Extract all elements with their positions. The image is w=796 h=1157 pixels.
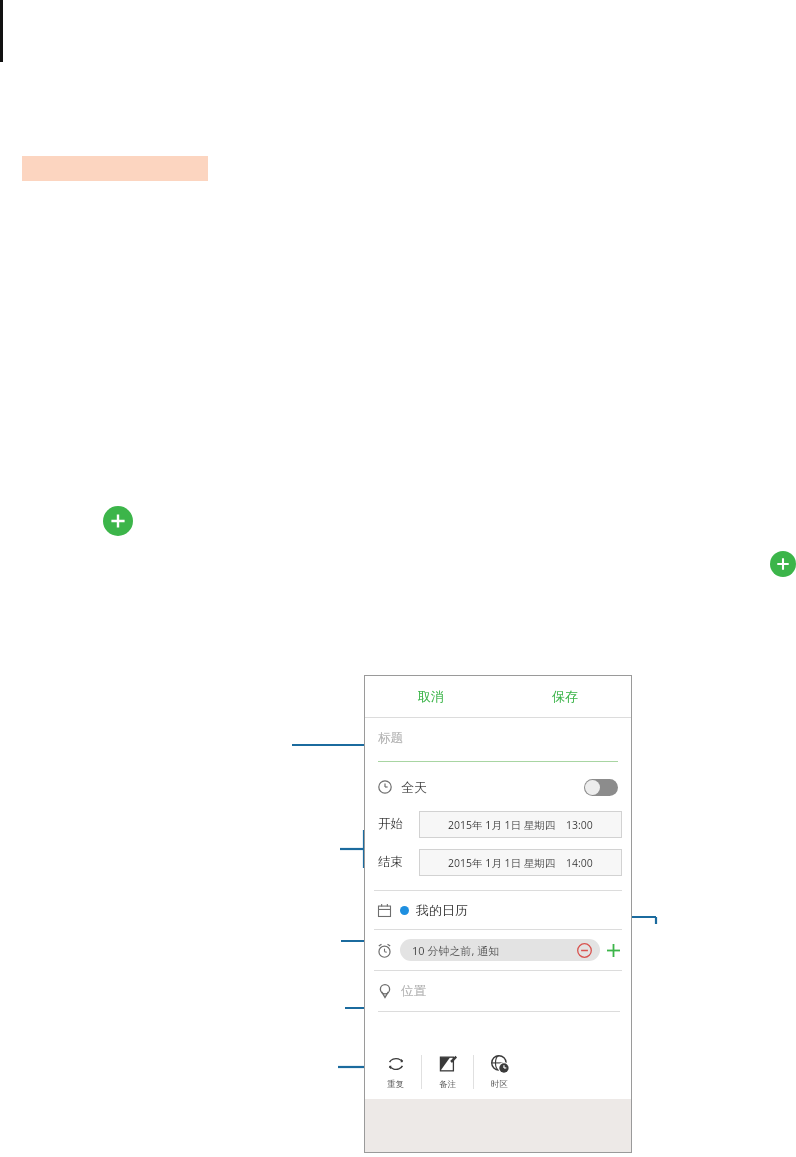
staticText: 全天 (401, 779, 427, 795)
staticText: 10 分钟之前, 通知 (412, 943, 500, 958)
staticText: 2015年 1月 1日 星期四 (448, 818, 556, 832)
button[interactable]: Add (770, 551, 796, 577)
button[interactable]: 时区 (474, 1045, 525, 1099)
staticText: 时区 (491, 1079, 508, 1090)
button[interactable]: All day toggle (584, 779, 618, 796)
button[interactable]: 2015年 1月 1日 星期四 (419, 811, 622, 838)
staticText: 备注 (439, 1079, 456, 1090)
staticText: 开始 (378, 816, 403, 832)
button[interactable]: 全天 (364, 766, 632, 808)
button[interactable]: 保存 (498, 675, 632, 717)
button[interactable]: 备注 (422, 1045, 473, 1099)
staticText: 14:00 (566, 856, 593, 870)
staticText: 标题 (378, 730, 403, 746)
staticText: 我的日历 (416, 902, 468, 918)
button[interactable]: 取消 (364, 675, 498, 717)
staticText: 位置 (401, 983, 426, 999)
button[interactable]: 2015年 1月 1日 星期四 (419, 849, 622, 876)
button[interactable]: 重复 (370, 1045, 421, 1099)
staticText: 13:00 (566, 818, 593, 832)
button[interactable]: Add reminder (600, 937, 626, 963)
button[interactable]: 10 分钟之前, 通知 (400, 939, 600, 961)
button[interactable]: Add (103, 506, 133, 536)
staticText: 取消 (418, 688, 444, 704)
button[interactable]: 标题 (364, 718, 632, 762)
button[interactable]: 我的日历 (364, 891, 632, 929)
button[interactable]: Remove reminder (577, 943, 592, 958)
staticText: 重复 (387, 1079, 404, 1090)
staticText: 结束 (378, 854, 403, 870)
staticText: 2015年 1月 1日 星期四 (448, 856, 556, 870)
button[interactable]: 位置 (364, 971, 632, 1011)
staticText: 保存 (552, 688, 578, 704)
